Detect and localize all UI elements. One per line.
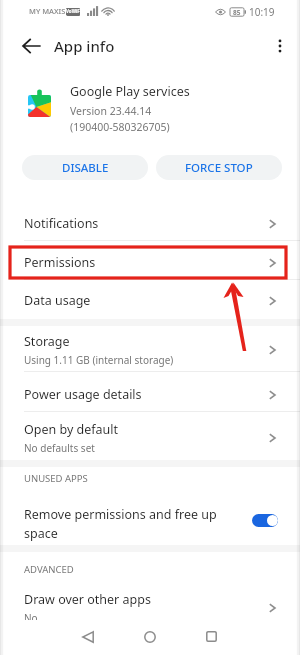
staticText: 10:19 [249,5,275,19]
button[interactable]: FORCE STOP [156,155,282,180]
button[interactable]: Draw over other apps [0,586,300,630]
staticText: FORCE STOP [185,160,253,176]
staticText: Google Play services [70,83,190,100]
button[interactable]: DISABLE [22,155,148,180]
staticText: VoWiFi [66,8,80,16]
staticText: 85 [233,8,241,17]
staticText: DISABLE [62,160,109,176]
button[interactable]: Back [14,29,48,63]
button[interactable]: More options [263,29,297,63]
staticText: MY MAXIS [29,6,66,16]
staticText: Using 1.11 GB (internal storage) [24,353,174,367]
button[interactable]: Home [133,620,166,653]
staticText: (190400-580326705) [70,120,170,134]
staticText: Storage [24,333,70,350]
button[interactable]: Recent apps [195,620,228,653]
staticText: Permissions [24,254,96,271]
button[interactable]: Power usage details [0,375,300,414]
staticText: Version 23.44.14 [70,104,152,118]
staticText: ADVANCED [24,563,74,576]
button[interactable]: Permissions [0,243,300,282]
staticText: Draw over other apps [24,591,151,608]
staticText: Remove permissions and free up [24,506,217,523]
staticText: Open by default [24,421,119,438]
staticText: space [24,525,58,542]
button[interactable]: Notifications [0,204,300,243]
staticText: UNUSED APPS [24,472,88,485]
staticText: Data usage [24,292,91,309]
button[interactable]: Back [71,620,104,653]
staticText: No defaults set [24,441,95,455]
staticText: No [24,611,38,625]
staticText: Notifications [24,215,99,232]
button[interactable]: Storage [0,326,300,373]
button[interactable]: Open by default [0,416,300,460]
staticText: App info [54,36,115,56]
button[interactable]: Data usage [0,282,300,319]
button[interactable]: Remove permissions and free up [0,489,300,545]
staticText: Power usage details [24,386,142,403]
